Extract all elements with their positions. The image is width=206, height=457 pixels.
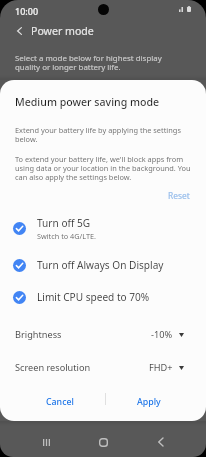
staticText: -10% [151,328,173,341]
staticText: To extend your battery life, we'll block… [15,154,195,182]
staticText: Apply [137,396,161,408]
staticText: 10:00 [15,5,39,17]
button[interactable]: Brightness [0,319,206,349]
button[interactable]: Back [145,427,175,457]
staticText: Power mode [31,24,94,38]
button[interactable]: Screen resolution [0,352,206,382]
button[interactable]: Cancel [22,388,98,416]
button[interactable]: Navigate up [8,21,30,41]
staticText: Screen resolution [15,361,91,374]
button[interactable]: Turn off 5G [0,213,206,243]
button[interactable]: Home [88,427,118,457]
button[interactable]: Limit CPU speed to 70% [0,282,206,312]
staticText: Brightness [15,328,62,341]
staticText: FHD+ [149,361,173,374]
staticText: Turn off Always On Display [37,258,164,272]
staticText: Cancel [46,396,74,408]
button[interactable]: Reset [164,188,194,202]
staticText: Reset [168,190,190,201]
staticText: Limit CPU speed to 70% [37,290,150,304]
button[interactable]: Turn off Always On Display [0,250,206,280]
button[interactable]: Recents [31,427,61,457]
staticText: Turn off 5G [37,216,91,230]
button[interactable]: Apply [111,388,187,416]
staticText: Medium power saving mode [15,95,160,109]
staticText: Switch to 4G/LTE. [37,231,97,241]
staticText: Select a mode below for highest display … [15,53,181,72]
staticText: Extend your battery life by applying the… [15,125,193,144]
